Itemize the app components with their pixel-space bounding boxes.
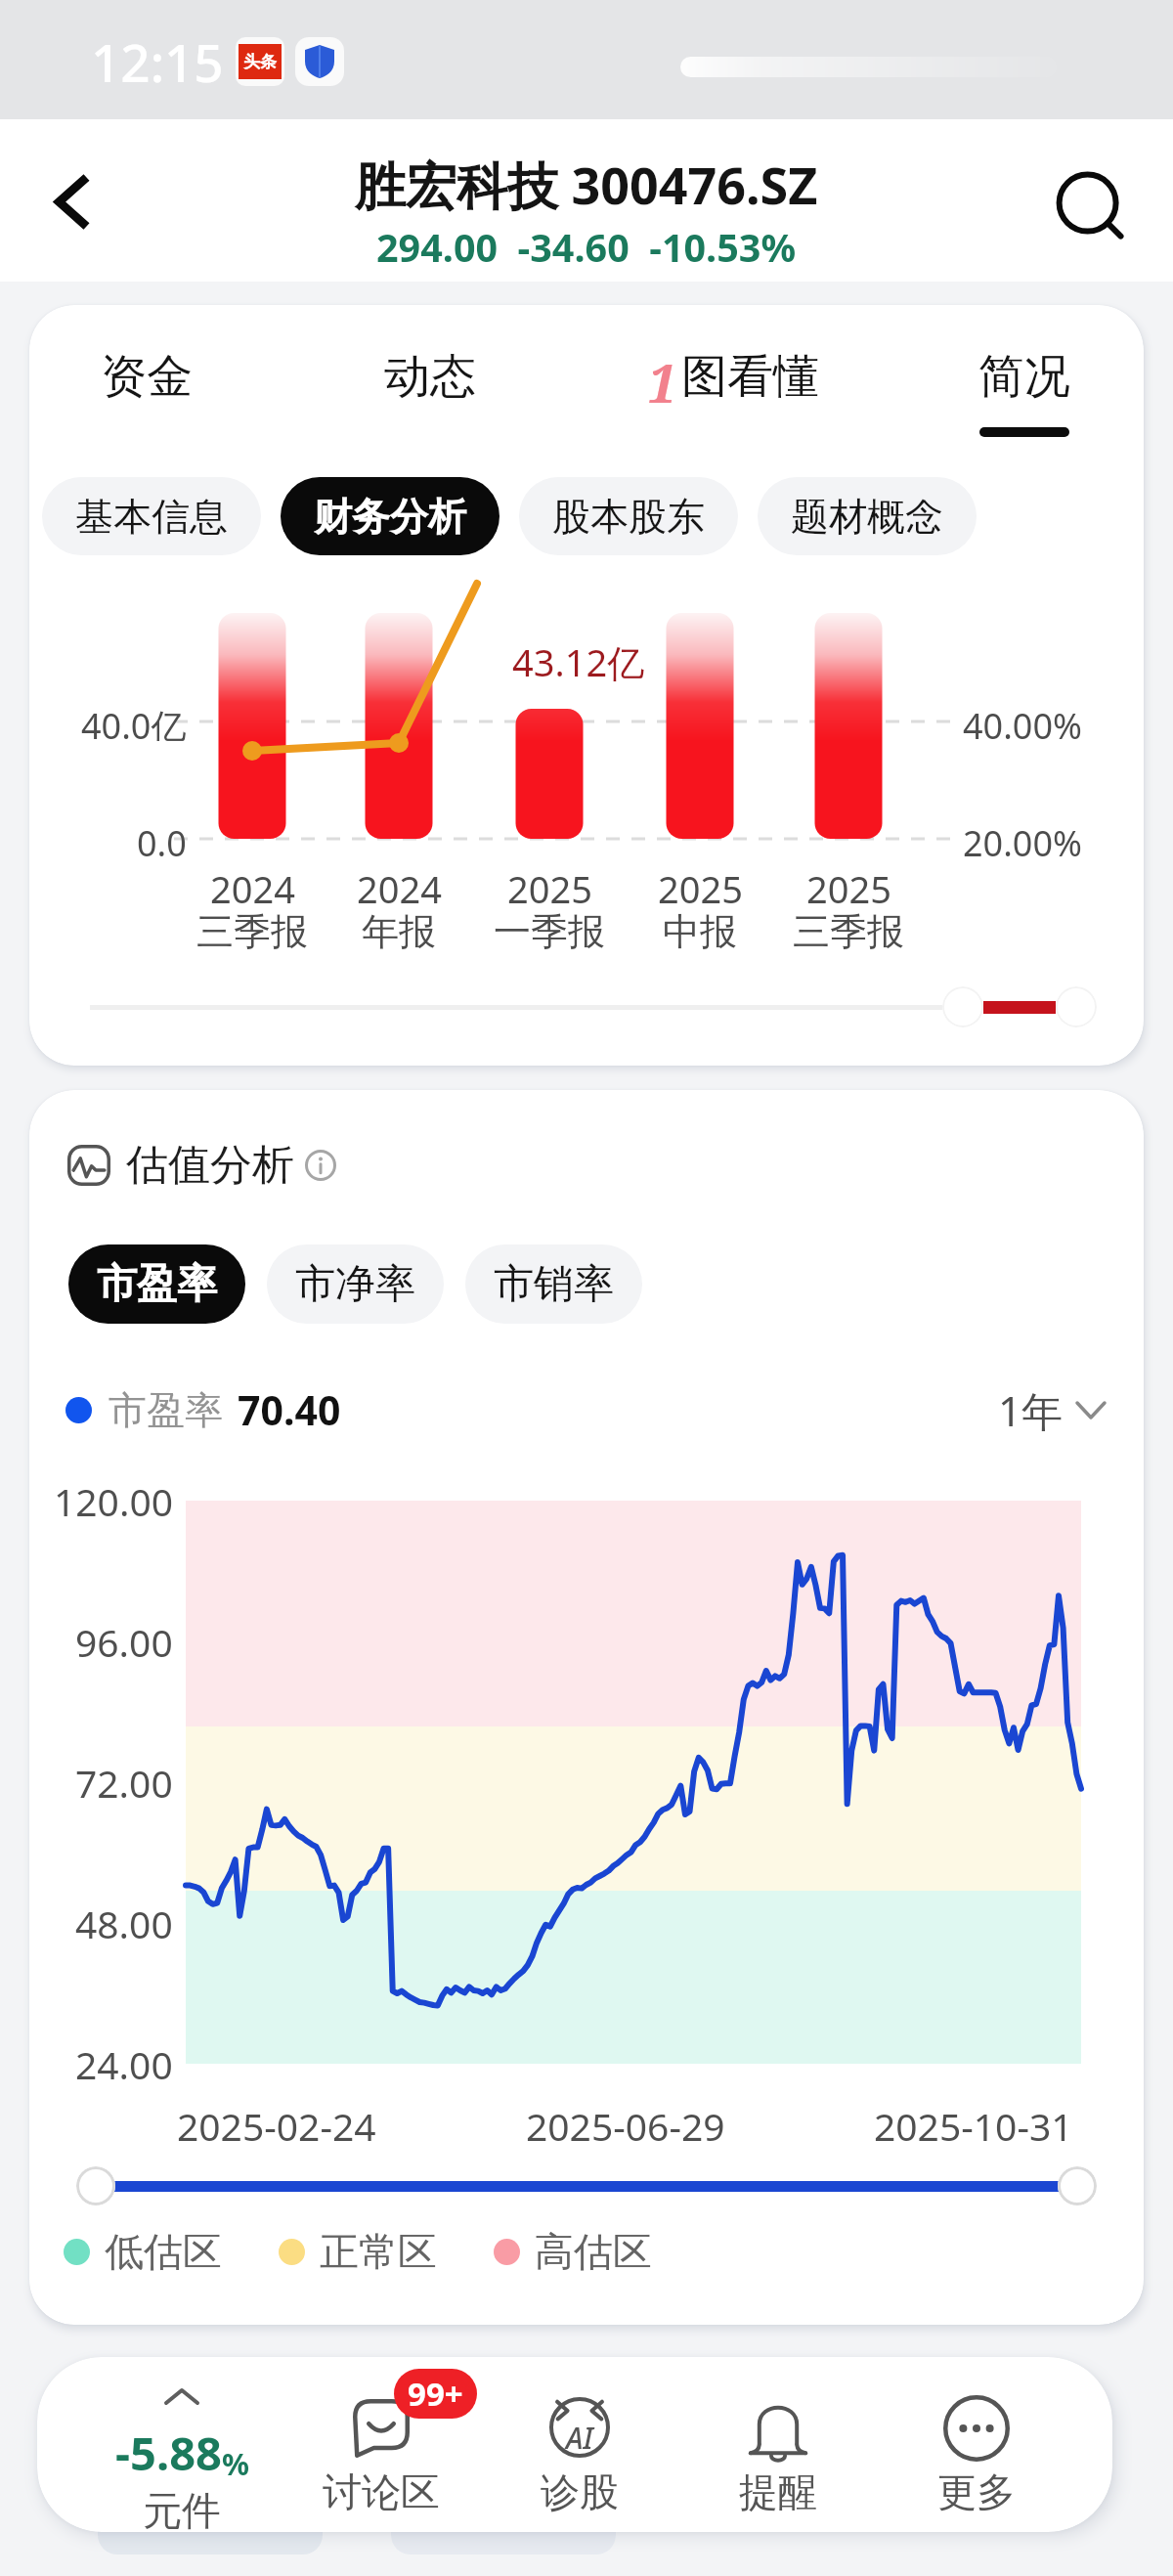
button[interactable]: 股本股东 (519, 477, 738, 555)
button[interactable]: 市销率 (465, 1244, 642, 1324)
button[interactable]: Back (6, 135, 140, 269)
staticText: 市盈率 (97, 1259, 217, 1310)
button[interactable]: 更多 (877, 2357, 1075, 2532)
staticText: 三季报 (793, 908, 904, 955)
staticText: 市净率 (295, 1259, 415, 1310)
staticText: 提醒 (739, 2467, 817, 2516)
staticText: 更多 (937, 2467, 1016, 2516)
button[interactable]: Search (1030, 146, 1157, 273)
button[interactable]: 题材概念 (758, 477, 977, 555)
button[interactable]: 基本信息 (42, 477, 261, 555)
button[interactable]: 简况 (878, 346, 1144, 437)
staticText: 年报 (362, 908, 436, 955)
staticText: 图看懂 (681, 348, 819, 406)
staticText: 20.00% (963, 819, 1082, 858)
staticText: 讨论区 (323, 2467, 440, 2516)
staticText: 头条 (243, 52, 277, 72)
staticText: 48.00 (75, 1898, 173, 1949)
button[interactable]: 1年 (998, 1382, 1105, 1438)
staticText: 2025 (806, 863, 891, 910)
staticText: 12:15 (91, 26, 224, 97)
staticText: 96.00 (75, 1616, 173, 1668)
staticText: 40.00% (963, 702, 1082, 741)
staticText: 120.00 (54, 1475, 173, 1527)
staticText: 胜宏科技 300476.SZ (355, 150, 818, 219)
staticText: 0.0 (137, 819, 187, 858)
button[interactable]: 99+ (282, 2357, 480, 2532)
staticText: % (222, 2443, 249, 2484)
staticText: 43.12亿 (512, 636, 645, 687)
staticText: 估值分析 (126, 1139, 294, 1192)
staticText: 99+ (408, 2372, 463, 2416)
staticText: 正常区 (320, 2227, 437, 2276)
staticText: 2025 (507, 863, 592, 910)
staticText: 2024 (357, 863, 442, 910)
button[interactable]: 1 (586, 346, 880, 407)
staticText: 2024 (210, 863, 295, 910)
button[interactable]: -5.88 (82, 2357, 282, 2532)
staticText: 2025-10-31 (874, 2100, 1073, 2152)
button[interactable]: 市盈率 (68, 1244, 245, 1324)
staticText: 70.40 (238, 1382, 341, 1437)
staticText: 元件 (143, 2486, 221, 2532)
staticText: 294.00 -34.60 -10.53% (376, 221, 797, 274)
staticText: 财务分析 (314, 493, 466, 541)
staticText: 股本股东 (552, 493, 705, 541)
staticText: 三季报 (196, 908, 308, 955)
staticText: 简况 (978, 348, 1070, 406)
staticText: 中报 (663, 908, 737, 955)
button[interactable]: 提醒 (678, 2357, 877, 2532)
button[interactable]: AI (480, 2357, 678, 2532)
staticText: 市盈率 (109, 1386, 223, 1434)
staticText: -5.88 (115, 2422, 222, 2484)
staticText: 低估区 (105, 2227, 222, 2276)
staticText: 2025-06-29 (526, 2100, 725, 2152)
staticText: 24.00 (75, 2038, 173, 2090)
button[interactable]: 动态 (283, 346, 577, 407)
button[interactable]: 财务分析 (281, 477, 500, 555)
staticText: 诊股 (541, 2467, 619, 2516)
staticText: 资金 (101, 348, 193, 406)
staticText: 动态 (384, 348, 476, 406)
staticText: 题材概念 (791, 493, 943, 541)
staticText: 高估区 (535, 2227, 652, 2276)
staticText: 市销率 (494, 1259, 614, 1310)
staticText: 2025-02-24 (177, 2100, 376, 2152)
staticText: 一季报 (494, 908, 605, 955)
staticText: AI (566, 2418, 593, 2458)
button[interactable]: 市净率 (267, 1244, 444, 1324)
staticText: 基本信息 (75, 493, 228, 541)
staticText: 2025 (658, 863, 743, 910)
staticText: 1 (647, 346, 677, 407)
staticText: 72.00 (75, 1757, 173, 1809)
button[interactable]: 资金 (29, 346, 293, 407)
staticText: 1年 (998, 1382, 1064, 1438)
staticText: 40.0亿 (81, 702, 187, 741)
